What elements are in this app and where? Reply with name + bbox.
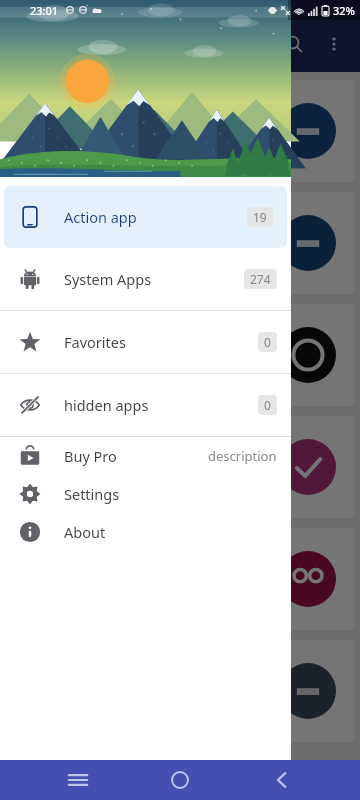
staticText: Settings: [64, 484, 120, 504]
staticText: System Apps: [64, 269, 152, 289]
staticText: Action app: [64, 207, 137, 227]
staticText: Favorites: [64, 332, 126, 352]
staticText: About: [64, 522, 106, 542]
button[interactable]: Settings: [0, 475, 291, 513]
button[interactable]: Buy Pro: [0, 437, 291, 475]
button[interactable]: [6, 304, 354, 406]
button[interactable]: More options: [314, 24, 354, 64]
button[interactable]: System Apps: [0, 248, 291, 310]
staticText: 19: [253, 209, 267, 225]
button[interactable]: Search: [274, 24, 314, 64]
staticText: 23:01: [30, 3, 59, 18]
staticText: hidden apps: [64, 395, 149, 415]
staticText: 274: [250, 271, 271, 287]
button[interactable]: [6, 640, 354, 742]
button[interactable]: Favorites: [0, 311, 291, 373]
button[interactable]: hidden apps: [0, 374, 291, 436]
staticText: 0: [264, 334, 271, 350]
button[interactable]: [6, 80, 354, 182]
button[interactable]: [6, 416, 354, 518]
staticText: 32%: [333, 3, 355, 18]
button[interactable]: About: [0, 513, 291, 551]
staticText: Buy Pro: [64, 446, 117, 466]
staticText: description: [208, 447, 277, 465]
button[interactable]: Action app: [4, 186, 287, 248]
button[interactable]: Home: [156, 760, 204, 800]
button[interactable]: Back: [258, 760, 306, 800]
button[interactable]: Recents: [54, 760, 102, 800]
button[interactable]: [6, 192, 354, 294]
staticText: 0: [264, 397, 271, 413]
button[interactable]: [6, 528, 354, 630]
